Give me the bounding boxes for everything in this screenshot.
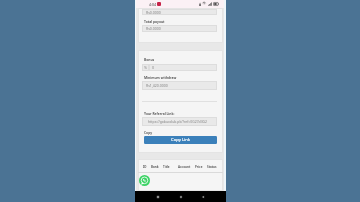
button[interactable]: Home xyxy=(177,193,185,201)
staticText: Copy Link xyxy=(171,137,190,143)
staticText: Minimum withdraw xyxy=(144,75,177,79)
staticText: Total payout xyxy=(144,19,165,23)
staticText: Rs0.0000 xyxy=(146,26,161,31)
staticText: 0 xyxy=(152,65,155,70)
staticText: Rs0.0000 xyxy=(146,10,161,15)
staticText: Account xyxy=(178,165,191,169)
staticText: 4:04 xyxy=(149,2,157,7)
staticText: https://gobuxclub.pk/?ref=0G27d3G2 xyxy=(148,119,208,124)
button[interactable]: Chat on WhatsApp xyxy=(139,175,150,186)
staticText: Bonus xyxy=(144,57,155,61)
button[interactable]: Back xyxy=(199,193,207,201)
staticText: Bank xyxy=(151,165,159,169)
staticText: ID xyxy=(143,165,147,169)
staticText: % xyxy=(144,65,147,70)
staticText: Price xyxy=(195,165,203,169)
staticText: Your Referral Link: xyxy=(144,111,175,115)
staticText: Copy xyxy=(144,130,153,134)
button[interactable]: Recents xyxy=(154,193,162,201)
staticText: Title xyxy=(163,165,170,169)
button[interactable]: Copy Link xyxy=(144,136,217,144)
staticText: Rs1,420.0000 xyxy=(146,83,168,88)
staticText: Status xyxy=(207,165,217,169)
